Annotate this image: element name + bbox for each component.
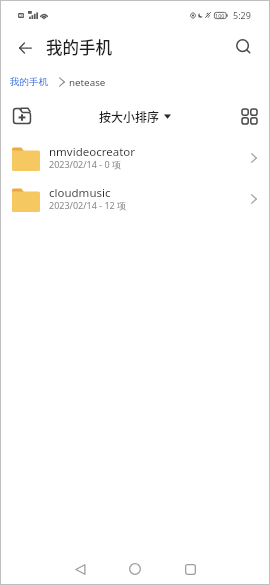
staticText: 5:29: [233, 9, 251, 21]
button[interactable]: Home: [119, 553, 151, 585]
button[interactable]: Back: [9, 31, 42, 64]
staticText: cloudmusic: [49, 185, 111, 201]
staticText: nmvideocreator: [49, 144, 136, 160]
button[interactable]: 我的手机: [10, 76, 48, 88]
staticText: 我的手机: [46, 35, 112, 59]
button[interactable]: Grid view: [235, 102, 263, 130]
button[interactable]: 按大小排序: [95, 104, 175, 129]
staticText: 2023/02/14 - 12 项: [49, 199, 127, 211]
staticText: 按大小排序: [99, 108, 160, 125]
button[interactable]: nmvideocreator: [0, 138, 270, 179]
button[interactable]: netease: [69, 76, 106, 89]
button[interactable]: Search: [229, 32, 259, 62]
button[interactable]: Recent apps: [174, 553, 206, 585]
button[interactable]: New folder: [8, 102, 36, 130]
button[interactable]: Back: [64, 553, 96, 585]
staticText: 2023/02/14 - 0 项: [49, 158, 121, 170]
button[interactable]: cloudmusic: [0, 179, 270, 220]
staticText: 100: [215, 12, 225, 19]
